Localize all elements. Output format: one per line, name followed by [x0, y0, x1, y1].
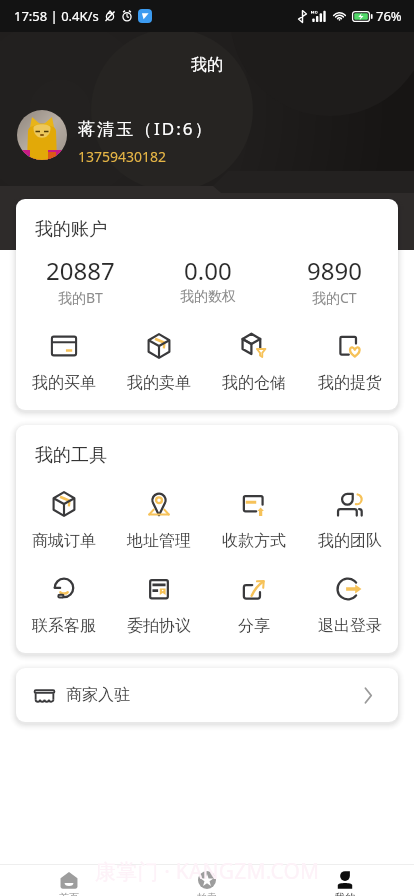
staticText: 分享 — [238, 616, 270, 636]
staticText: 13759430182 — [78, 147, 167, 166]
staticText: 我的仓储 — [222, 373, 286, 393]
staticText: 蒋清玉（ID:6） — [78, 117, 214, 140]
button[interactable]: 首页 — [0, 864, 138, 896]
staticText: 我的账户 — [35, 218, 107, 241]
staticText: 商家入驻 — [66, 685, 130, 705]
button[interactable]: 我的卖单 — [111, 333, 206, 393]
staticText: 我的 — [335, 891, 355, 896]
button[interactable]: 商家入驻 — [16, 668, 398, 722]
staticText: 我的数权 — [180, 288, 236, 306]
staticText: 17:58 | 0.4K/s — [14, 7, 99, 25]
staticText: 退出登录 — [318, 616, 382, 636]
button[interactable]: 我的提货 — [302, 333, 398, 393]
staticText: 我的卖单 — [127, 373, 191, 393]
staticText: 我的CT — [312, 288, 357, 307]
staticText: 地址管理 — [127, 531, 191, 551]
staticText: 我的工具 — [35, 444, 107, 467]
staticText: 20887 — [46, 254, 115, 287]
staticText: 首页 — [59, 891, 79, 896]
button[interactable]: 我的团队 — [302, 491, 398, 551]
staticText: 联系客服 — [32, 616, 96, 636]
button[interactable]: 我的仓储 — [206, 333, 302, 393]
staticText: 我的团队 — [318, 531, 382, 551]
staticText: 我的BT — [58, 288, 103, 307]
staticText: 我的提货 — [318, 373, 382, 393]
staticText: 9890 — [307, 254, 362, 287]
staticText: 拍卖 — [197, 891, 217, 896]
staticText: 收款方式 — [222, 531, 286, 551]
button[interactable]: 联系客服 — [16, 576, 111, 636]
button[interactable]: 分享 — [206, 576, 302, 636]
button[interactable]: 我的 — [276, 864, 414, 896]
staticText: 我的买单 — [32, 373, 96, 393]
button[interactable]: 退出登录 — [302, 576, 398, 636]
button[interactable]: 商城订单 — [16, 491, 111, 551]
button[interactable]: 地址管理 — [111, 491, 206, 551]
button[interactable]: 委拍协议 — [111, 576, 206, 636]
staticText: 委拍协议 — [127, 616, 191, 636]
staticText: 76% — [376, 7, 402, 25]
button[interactable]: 收款方式 — [206, 491, 302, 551]
staticText: 商城订单 — [32, 531, 96, 551]
staticText: 康掌门 · KANGZM.COM — [95, 857, 320, 886]
button[interactable]: 拍卖 — [138, 864, 276, 896]
staticText: 0.00 — [184, 254, 232, 287]
button[interactable]: 我的买单 — [16, 333, 111, 393]
staticText: 我的 — [191, 55, 223, 75]
